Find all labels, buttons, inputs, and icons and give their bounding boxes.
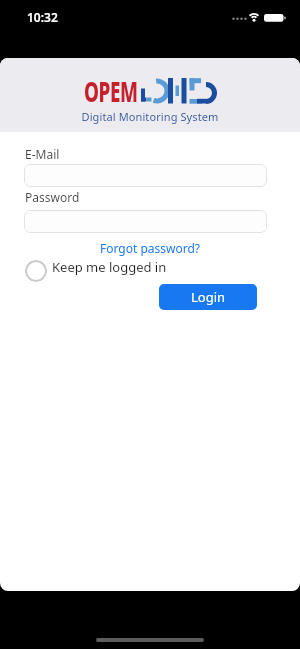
staticText: Digital Monitoring System (0, 109, 300, 124)
button[interactable]: Forgot password? (0, 240, 300, 256)
staticText: E-Mail (25, 146, 60, 162)
staticText: Login (191, 288, 226, 306)
staticText: Keep me logged in (52, 258, 167, 276)
button[interactable] (24, 164, 267, 187)
staticText: OPEM (84, 71, 138, 110)
button[interactable] (25, 260, 47, 282)
staticText: Password (25, 189, 80, 205)
staticText: 10:32 (27, 9, 58, 25)
button[interactable]: Login (159, 284, 257, 310)
button[interactable] (24, 210, 267, 233)
